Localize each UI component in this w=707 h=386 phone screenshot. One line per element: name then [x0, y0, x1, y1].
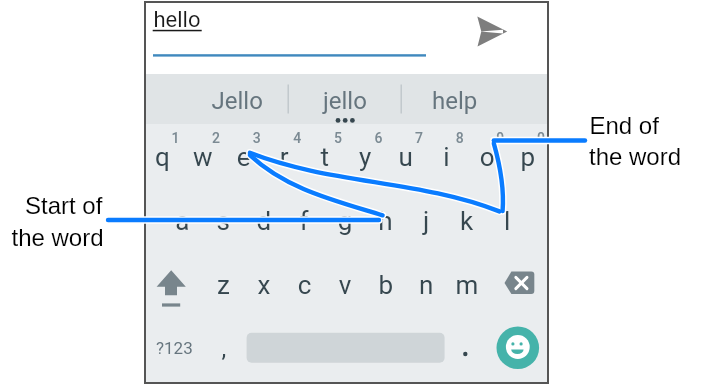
button[interactable]: [0, 0, 707, 386]
